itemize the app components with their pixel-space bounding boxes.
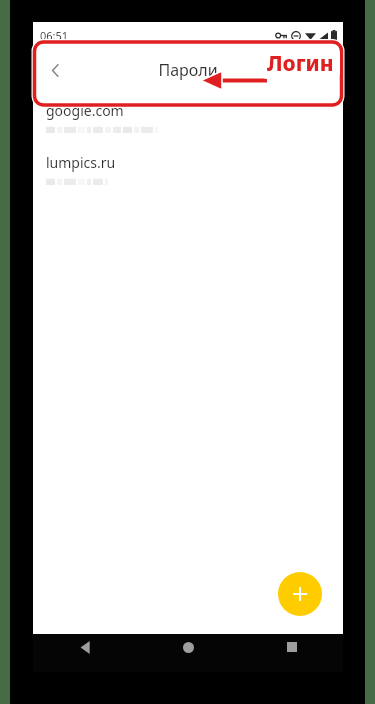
- button[interactable]: Add password: [278, 572, 322, 616]
- button[interactable]: Recent apps: [240, 634, 343, 672]
- button[interactable]: More options: [312, 56, 340, 84]
- staticText: 06:51: [40, 28, 69, 43]
- button[interactable]: Search: [278, 53, 312, 87]
- staticText: lumpics.ru: [46, 153, 116, 172]
- button[interactable]: Back: [37, 52, 73, 88]
- staticText: google.com: [46, 101, 124, 120]
- button[interactable]: lumpics.ru: [33, 144, 343, 196]
- button[interactable]: Back: [33, 634, 137, 672]
- button[interactable]: google.com: [33, 92, 343, 144]
- staticText: Пароли: [158, 59, 218, 81]
- staticText: Логин: [267, 49, 334, 78]
- button[interactable]: Home: [137, 634, 240, 672]
